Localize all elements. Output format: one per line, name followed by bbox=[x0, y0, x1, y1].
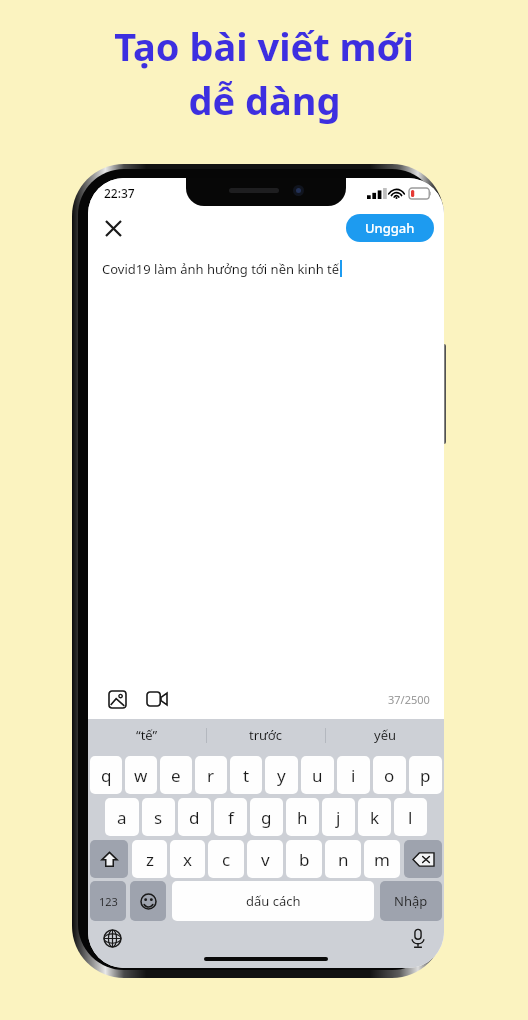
staticText: s bbox=[154, 806, 163, 829]
staticText: m bbox=[374, 848, 390, 871]
button[interactable]: l bbox=[394, 798, 427, 836]
staticText: j bbox=[336, 806, 341, 829]
button[interactable]: Key bbox=[404, 840, 442, 878]
staticText: p bbox=[420, 764, 431, 787]
button[interactable]: f bbox=[214, 798, 247, 836]
button[interactable]: y bbox=[265, 756, 298, 794]
button[interactable]: trước bbox=[207, 719, 325, 751]
button[interactable]: n bbox=[325, 840, 361, 878]
staticText: e bbox=[171, 764, 181, 787]
staticText: 37/2500 bbox=[388, 692, 430, 707]
staticText: 123 bbox=[99, 894, 118, 909]
staticText: dấu cách bbox=[246, 892, 301, 910]
button[interactable]: o bbox=[373, 756, 406, 794]
staticText: o bbox=[384, 764, 395, 787]
staticText: x bbox=[183, 848, 192, 871]
button[interactable]: e bbox=[160, 756, 192, 794]
button[interactable]: Unggah bbox=[346, 214, 434, 242]
button[interactable]: c bbox=[208, 840, 244, 878]
button[interactable]: dấu cách bbox=[172, 881, 374, 921]
button[interactable]: Add photo bbox=[102, 684, 132, 714]
staticText: yếu bbox=[374, 726, 396, 744]
staticText: dễ dàng bbox=[188, 74, 341, 126]
button[interactable]: g bbox=[250, 798, 283, 836]
staticText: Unggah bbox=[365, 219, 415, 237]
button[interactable]: r bbox=[195, 756, 227, 794]
button[interactable]: q bbox=[90, 756, 122, 794]
button[interactable]: x bbox=[170, 840, 205, 878]
button[interactable]: u bbox=[301, 756, 334, 794]
button[interactable]: z bbox=[132, 840, 167, 878]
staticText: u bbox=[312, 764, 323, 787]
staticText: z bbox=[146, 848, 154, 871]
button[interactable]: p bbox=[409, 756, 442, 794]
button[interactable]: Close bbox=[96, 211, 130, 245]
button[interactable]: v bbox=[247, 840, 283, 878]
button[interactable]: w bbox=[125, 756, 157, 794]
staticText: b bbox=[299, 848, 310, 871]
staticText: r bbox=[207, 764, 215, 787]
staticText: trước bbox=[249, 726, 283, 744]
button[interactable]: m bbox=[364, 840, 400, 878]
staticText: Nhập bbox=[394, 892, 428, 910]
button[interactable]: a bbox=[105, 798, 139, 836]
staticText: d bbox=[189, 806, 200, 829]
button[interactable]: j bbox=[322, 798, 355, 836]
staticText: l bbox=[408, 806, 413, 829]
button[interactable]: 123 bbox=[90, 881, 126, 921]
button[interactable]: “tế” bbox=[88, 719, 206, 751]
button[interactable]: Nhập bbox=[380, 881, 442, 921]
staticText: y bbox=[277, 764, 286, 787]
staticText: w bbox=[134, 764, 148, 787]
staticText: q bbox=[101, 764, 112, 787]
staticText: c bbox=[222, 848, 231, 871]
staticText: i bbox=[351, 764, 356, 787]
staticText: k bbox=[370, 806, 380, 829]
button[interactable]: Emoji bbox=[130, 881, 166, 921]
staticText: Covid19 làm ảnh hưởng tới nền kinh tế bbox=[102, 260, 340, 278]
button[interactable]: Voice input bbox=[404, 924, 432, 952]
button[interactable]: Key bbox=[90, 840, 128, 878]
button[interactable]: b bbox=[286, 840, 322, 878]
button[interactable]: d bbox=[178, 798, 211, 836]
staticText: a bbox=[117, 806, 127, 829]
staticText: h bbox=[297, 806, 308, 829]
staticText: 22:37 bbox=[104, 185, 135, 201]
button[interactable]: t bbox=[230, 756, 262, 794]
staticText: v bbox=[261, 848, 270, 871]
button[interactable]: s bbox=[142, 798, 175, 836]
button[interactable]: i bbox=[337, 756, 370, 794]
staticText: f bbox=[228, 806, 234, 829]
staticText: Tạo bài viết mới bbox=[114, 20, 414, 72]
staticText: “tế” bbox=[136, 726, 158, 744]
button[interactable]: yếu bbox=[326, 719, 444, 751]
button[interactable]: h bbox=[286, 798, 319, 836]
button[interactable]: k bbox=[358, 798, 391, 836]
staticText: t bbox=[243, 764, 250, 787]
button[interactable]: Add video bbox=[142, 684, 172, 714]
button[interactable]: Change keyboard bbox=[98, 924, 126, 952]
staticText: g bbox=[261, 806, 272, 829]
staticText: n bbox=[338, 848, 349, 871]
